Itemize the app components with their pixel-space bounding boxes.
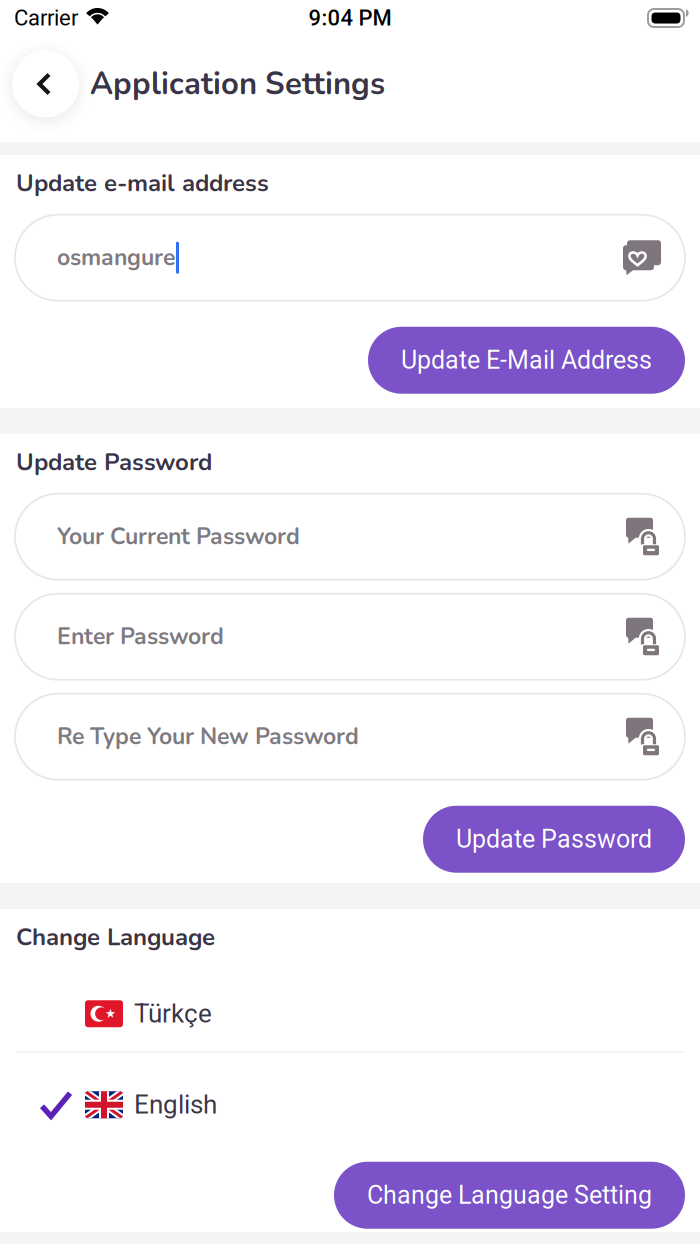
button[interactable]: Back bbox=[6, 44, 85, 123]
staticText: Re Type Your New Password bbox=[57, 721, 359, 752]
staticText: Enter Password bbox=[57, 621, 224, 652]
staticText: Your Current Password bbox=[57, 521, 300, 552]
staticText: Update Password bbox=[16, 446, 212, 479]
staticText: Türkçe bbox=[134, 998, 212, 1029]
button[interactable]: Türkçe bbox=[0, 954, 700, 1052]
staticText: 9:04 PM bbox=[308, 5, 391, 31]
button[interactable]: Change Language Setting bbox=[334, 1162, 685, 1229]
staticText: Carrier bbox=[14, 5, 78, 31]
staticText: English bbox=[134, 1089, 217, 1120]
staticText: Change Language bbox=[16, 921, 215, 954]
staticText: Update E-Mail Address bbox=[401, 346, 652, 375]
staticText: Update Password bbox=[456, 825, 652, 854]
button[interactable]: Update Password bbox=[423, 806, 685, 873]
staticText: Change Language Setting bbox=[367, 1181, 652, 1210]
staticText: Application Settings bbox=[90, 63, 385, 105]
button[interactable]: English bbox=[0, 1053, 700, 1157]
staticText: Update e-mail address bbox=[16, 167, 269, 200]
staticText: osmangure bbox=[57, 242, 175, 273]
button[interactable]: Update E-Mail Address bbox=[368, 327, 685, 394]
